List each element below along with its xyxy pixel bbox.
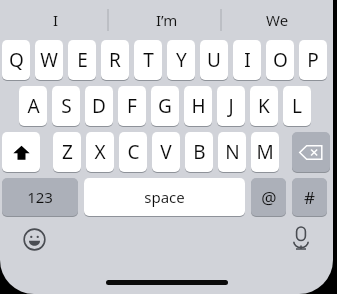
staticText: O [273,47,288,73]
button[interactable]: G [151,86,179,126]
button[interactable]: Shift [2,132,40,172]
staticText: A [27,93,40,119]
button[interactable]: A [19,86,47,126]
button[interactable]: U [200,40,228,80]
button[interactable]: Emoji keyboard [18,223,50,255]
staticText: Z [62,139,73,165]
staticText: I’m [156,10,178,30]
button[interactable]: Z [53,132,81,172]
button[interactable]: N [218,132,246,172]
staticText: I [244,47,251,73]
staticText: B [193,139,206,165]
button[interactable]: O [266,40,294,80]
button[interactable]: W [35,40,63,80]
button[interactable]: T [134,40,162,80]
staticText: L [292,93,302,119]
staticText: D [92,93,106,119]
staticText: P [307,47,319,73]
button[interactable]: M [251,132,279,172]
button[interactable]: B [185,132,213,172]
staticText: R [109,47,121,73]
button[interactable]: Delete [292,132,330,172]
staticText: G [158,93,172,119]
staticText: H [191,93,206,119]
staticText: M [256,139,274,165]
button[interactable]: D [85,86,113,126]
staticText: E [77,47,88,73]
staticText: We [266,10,289,30]
staticText: W [40,47,58,73]
staticText: J [228,93,234,119]
staticText: 123 [27,187,53,207]
staticText: @ [261,186,277,209]
button[interactable]: R [101,40,129,80]
button[interactable]: Y [167,40,195,80]
staticText: Y [176,47,187,73]
button[interactable]: Dictation [285,222,317,254]
staticText: C [127,139,140,165]
staticText: V [160,139,172,165]
staticText: X [94,139,106,165]
button[interactable]: C [119,132,147,172]
staticText: K [258,93,270,119]
button[interactable]: P [299,40,327,80]
button[interactable]: # [292,178,327,216]
button[interactable]: K [250,86,278,126]
staticText: T [143,47,154,73]
button[interactable]: H [184,86,212,126]
staticText: S [61,93,72,119]
button[interactable]: J [217,86,245,126]
button[interactable]: Q [2,40,30,80]
staticText: U [207,47,221,73]
button[interactable]: X [86,132,114,172]
button[interactable]: @ [251,178,286,216]
button[interactable]: L [283,86,311,126]
button[interactable]: V [152,132,180,172]
staticText: I [53,10,59,30]
button[interactable]: space [84,178,245,216]
staticText: space [144,187,185,207]
button[interactable]: F [118,86,146,126]
staticText: N [225,139,240,165]
button[interactable]: I [233,40,261,80]
button[interactable]: I [0,0,111,40]
button[interactable]: We [222,0,333,40]
button[interactable]: I’m [111,0,222,40]
button[interactable]: E [68,40,96,80]
staticText: Q [9,47,24,73]
staticText: # [304,186,315,209]
button[interactable]: S [52,86,80,126]
button[interactable]: 123 [2,178,78,216]
staticText: F [127,93,137,119]
